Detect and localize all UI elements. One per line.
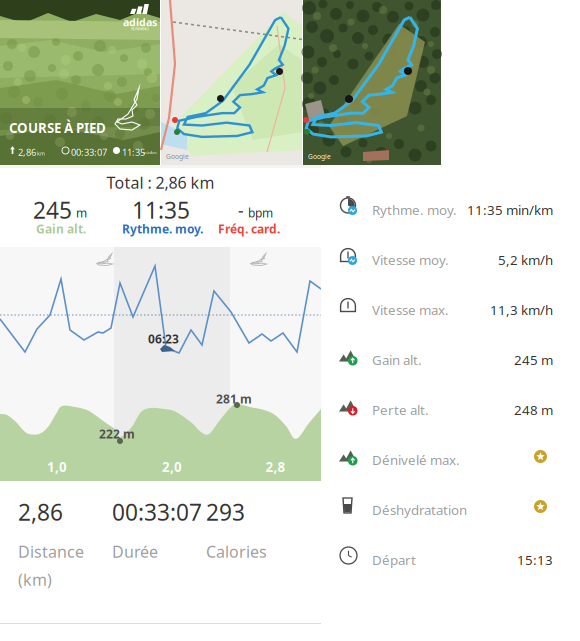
button[interactable]: Départ	[321, 532, 580, 582]
staticText: adidas	[123, 15, 157, 29]
staticText: Vitesse moy.	[372, 251, 449, 269]
staticText: Fréq. card.	[218, 221, 280, 237]
staticText: Rythme. moy.	[122, 221, 203, 237]
staticText: 11:35 min/km	[467, 201, 553, 219]
staticText: 245	[33, 195, 72, 225]
staticText: 11:35	[122, 146, 145, 158]
staticText: bpm	[248, 205, 273, 221]
staticText: 2,8	[265, 458, 285, 476]
staticText: 00:33:07	[112, 497, 202, 527]
staticText: 11,3 km/h	[490, 301, 553, 319]
staticText: 2,86	[18, 146, 36, 158]
staticText: RUNNING	[131, 26, 149, 31]
button[interactable]: Déshydratation	[321, 482, 580, 532]
button[interactable]: Vitesse max.	[321, 282, 580, 332]
staticText: 293	[206, 497, 245, 527]
button[interactable]: Perte alt.	[321, 382, 580, 432]
staticText: -	[238, 199, 244, 222]
staticText: 281 m	[216, 391, 252, 407]
staticText: Google	[166, 152, 189, 161]
staticText: Vitesse max.	[372, 301, 449, 319]
staticText: Perte alt.	[372, 401, 429, 419]
button[interactable]: Gain alt.	[321, 332, 580, 382]
staticText: COURSE À PIED	[9, 119, 106, 137]
staticText: Google	[308, 152, 331, 161]
staticText: 11:35	[132, 195, 190, 225]
staticText: Calories	[206, 541, 267, 562]
staticText: Gain alt.	[36, 221, 86, 237]
staticText: min/km	[143, 150, 157, 155]
staticText: 245 m	[514, 351, 553, 369]
staticText: 1,0	[47, 458, 67, 476]
staticText: (km)	[18, 569, 52, 590]
staticText: Total : 2,86 km	[106, 172, 214, 193]
staticText: Gain alt.	[372, 351, 422, 369]
staticText: Dénivelé max.	[372, 451, 460, 469]
staticText: Départ	[372, 551, 416, 569]
staticText: 2,86	[18, 497, 63, 527]
button[interactable]: Rythme. moy.	[321, 182, 580, 232]
staticText: m	[76, 205, 87, 221]
staticText: 5,2 km/h	[498, 251, 553, 269]
staticText: Distance	[18, 541, 84, 562]
button[interactable]: Vitesse moy.	[321, 232, 580, 282]
staticText: Durée	[112, 541, 158, 562]
staticText: Déshydratation	[372, 501, 467, 519]
button[interactable]: Dénivelé max.	[321, 432, 580, 482]
staticText: 15:13	[517, 551, 553, 569]
staticText: 248 m	[514, 401, 553, 419]
staticText: 2,0	[162, 458, 182, 476]
staticText: 00:33:07	[71, 146, 107, 158]
staticText: 06:23	[148, 331, 179, 347]
staticText: km	[37, 150, 45, 157]
staticText: Rythme. moy.	[372, 201, 457, 219]
staticText: 222 m	[99, 426, 135, 442]
